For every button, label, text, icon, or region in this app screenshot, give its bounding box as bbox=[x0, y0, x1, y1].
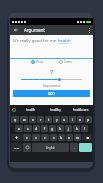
button[interactable]: w bbox=[20, 116, 28, 123]
button[interactable]: Emoji bbox=[23, 143, 31, 152]
staticText: healthy bbox=[50, 108, 61, 112]
button[interactable]: f bbox=[41, 125, 48, 132]
staticText: e bbox=[32, 117, 34, 122]
staticText: o bbox=[79, 117, 82, 122]
staticText: 7 bbox=[10, 68, 93, 76]
button[interactable]: Shift bbox=[11, 134, 22, 141]
staticText: health bbox=[26, 108, 36, 112]
button[interactable]: b bbox=[58, 134, 65, 141]
button[interactable]: a bbox=[15, 125, 23, 132]
staticText: health bbox=[58, 38, 71, 44]
staticText: t bbox=[48, 117, 50, 122]
button[interactable]: Enter bbox=[79, 143, 92, 152]
staticText: d bbox=[35, 126, 38, 131]
staticText: w bbox=[23, 117, 26, 122]
staticText: b bbox=[60, 135, 63, 140]
staticText: h bbox=[59, 126, 62, 131]
staticText: m bbox=[76, 135, 80, 140]
button[interactable]: u bbox=[61, 116, 68, 123]
staticText: It's really good for me bbox=[13, 38, 58, 44]
button[interactable]: y bbox=[53, 116, 60, 123]
button[interactable]: g bbox=[49, 125, 56, 132]
button[interactable]: . bbox=[70, 143, 78, 152]
staticText: ?123 bbox=[14, 146, 20, 149]
button[interactable]: j bbox=[65, 125, 72, 132]
button[interactable]: English bbox=[32, 143, 69, 152]
button[interactable]: x bbox=[32, 134, 40, 141]
staticText: f bbox=[44, 126, 46, 131]
staticText: u bbox=[63, 117, 66, 122]
staticText: n bbox=[68, 135, 71, 140]
button[interactable]: d bbox=[33, 125, 40, 132]
button[interactable]: Backspace bbox=[82, 134, 92, 141]
button[interactable]: Importance slider bbox=[21, 77, 82, 82]
staticText: i bbox=[72, 117, 73, 122]
button[interactable]: Cons bbox=[59, 59, 72, 64]
button[interactable]: Back bbox=[10, 25, 22, 35]
button[interactable]: healthy bbox=[43, 105, 68, 115]
button[interactable]: Google search bbox=[10, 105, 18, 115]
button[interactable]: health bbox=[18, 105, 43, 115]
button[interactable]: k bbox=[73, 125, 80, 132]
staticText: . bbox=[74, 146, 75, 150]
button[interactable]: c bbox=[41, 134, 49, 141]
button[interactable]: t bbox=[45, 116, 52, 123]
staticText: Cons bbox=[64, 59, 72, 64]
staticText: healthcare bbox=[73, 108, 89, 112]
staticText: q bbox=[14, 117, 17, 122]
button[interactable]: n bbox=[66, 134, 73, 141]
button[interactable]: i bbox=[69, 116, 76, 123]
staticText: r bbox=[40, 117, 42, 122]
button[interactable]: z bbox=[23, 134, 31, 141]
button[interactable]: More options bbox=[85, 25, 93, 35]
staticText: ADD bbox=[48, 92, 55, 96]
button[interactable]: e bbox=[29, 116, 36, 123]
button[interactable]: v bbox=[50, 134, 57, 141]
button[interactable]: l bbox=[81, 125, 88, 132]
button[interactable]: ADD bbox=[13, 90, 90, 97]
button[interactable]: healthcare bbox=[68, 105, 93, 115]
button[interactable]: o bbox=[77, 116, 84, 123]
button[interactable]: ?123 bbox=[11, 143, 22, 152]
staticText: y bbox=[56, 117, 58, 122]
button[interactable]: h bbox=[57, 125, 64, 132]
staticText: Pros bbox=[36, 59, 44, 64]
staticText: p bbox=[87, 117, 90, 122]
button[interactable]: m bbox=[74, 134, 81, 141]
staticText: a bbox=[18, 126, 20, 131]
staticText: g bbox=[51, 126, 54, 131]
staticText: z bbox=[26, 135, 28, 140]
staticText: Importance bbox=[10, 84, 93, 88]
staticText: Argument bbox=[24, 27, 45, 33]
staticText: s bbox=[27, 126, 29, 131]
button[interactable]: s bbox=[24, 125, 32, 132]
staticText: v bbox=[53, 135, 55, 140]
button[interactable]: r bbox=[37, 116, 44, 123]
staticText: k bbox=[76, 126, 78, 131]
button[interactable]: Pros bbox=[31, 59, 44, 64]
staticText: j bbox=[68, 126, 69, 131]
staticText: c bbox=[44, 135, 46, 140]
staticText: x bbox=[35, 135, 37, 140]
staticText: English bbox=[46, 146, 56, 150]
button[interactable]: p bbox=[85, 116, 92, 123]
staticText: l bbox=[84, 126, 85, 131]
button[interactable]: q bbox=[11, 116, 19, 123]
